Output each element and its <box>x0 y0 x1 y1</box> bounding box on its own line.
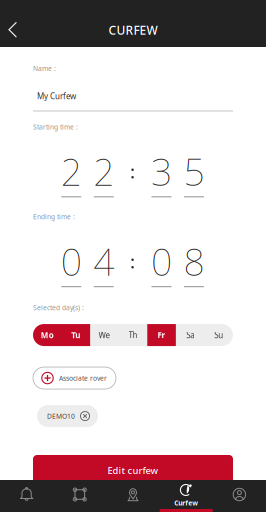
staticText: 0 <box>151 236 172 286</box>
staticText: My Curfew <box>37 91 76 101</box>
button[interactable]: Associate rover <box>33 367 116 389</box>
staticText: We <box>98 330 110 340</box>
button[interactable]: Mo <box>33 324 62 346</box>
staticText: 5 <box>183 146 204 196</box>
staticText: : <box>130 159 135 184</box>
staticText: 3 <box>151 146 172 196</box>
staticText: 4 <box>93 236 114 286</box>
button[interactable]: Back <box>0 13 26 47</box>
button[interactable]: Edit curfew <box>33 455 233 486</box>
button[interactable]: Su <box>204 324 233 346</box>
staticText: Fr <box>158 330 166 340</box>
button[interactable]: DEMO10 <box>37 405 98 427</box>
staticText: 2 <box>93 146 114 196</box>
button[interactable]: Fr <box>147 324 176 346</box>
staticText: Ending time : <box>33 212 75 221</box>
staticText: DEMO10 <box>47 412 75 420</box>
staticText: Tu <box>71 330 80 340</box>
staticText: Mo <box>41 330 54 340</box>
staticText: Edit curfew <box>107 464 158 477</box>
staticText: Name : <box>33 64 56 73</box>
staticText: 0 <box>61 236 82 286</box>
staticText: Associate rover <box>59 374 107 382</box>
staticText: Sa <box>186 330 194 340</box>
button[interactable]: Alerts <box>0 480 53 512</box>
button[interactable]: Zones <box>53 480 106 512</box>
staticText: : <box>130 249 135 274</box>
staticText: Su <box>214 330 223 340</box>
button[interactable]: Map <box>106 480 160 512</box>
button[interactable]: Th <box>119 324 147 346</box>
staticText: CURFEW <box>108 22 157 38</box>
staticText: Selected day(s) : <box>33 303 84 312</box>
staticText: 8 <box>183 236 204 286</box>
staticText: Th <box>128 330 137 340</box>
button[interactable]: We <box>90 324 119 346</box>
staticText: Starting time : <box>33 122 78 131</box>
button[interactable]: Sa <box>176 324 204 346</box>
button[interactable]: Tu <box>62 324 90 346</box>
staticText: 2 <box>61 146 82 196</box>
button[interactable]: Curfew <box>160 480 213 512</box>
button[interactable]: Profile <box>213 480 266 512</box>
staticText: Curfew <box>174 499 198 507</box>
